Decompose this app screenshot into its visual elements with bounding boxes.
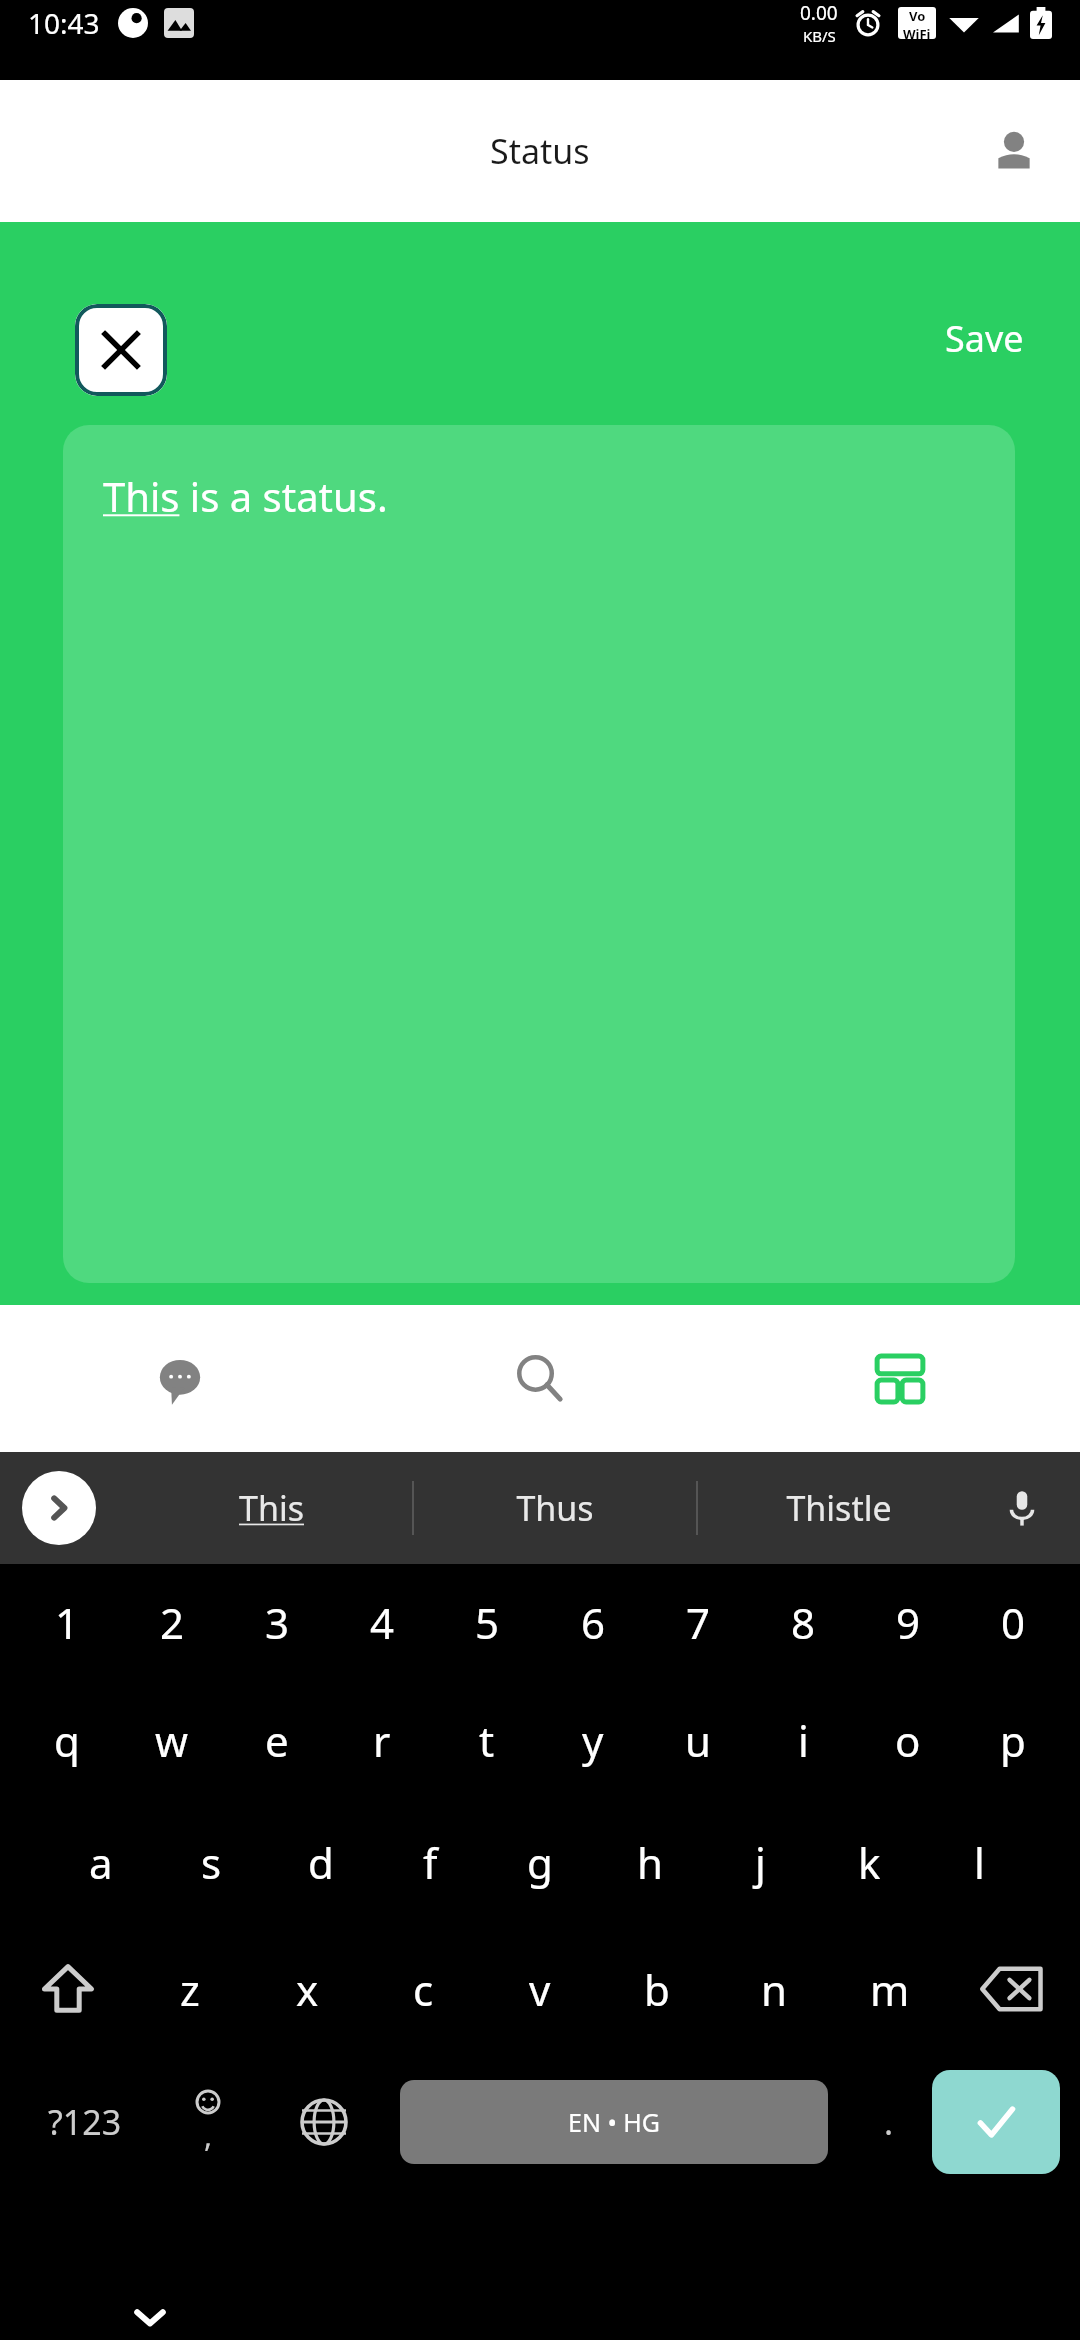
staticText: 3 <box>265 1594 290 1651</box>
staticText: p <box>1000 1712 1026 1769</box>
button[interactable]: Change keyboard language <box>266 2052 382 2192</box>
staticText: k <box>858 1834 881 1891</box>
button[interactable]: k <box>820 1804 918 1920</box>
button[interactable]: i <box>754 1682 852 1798</box>
button[interactable]: w <box>123 1682 221 1798</box>
staticText: 7 <box>686 1594 711 1651</box>
staticText: 0 <box>1001 1594 1026 1651</box>
button[interactable]: ?123 <box>20 2052 150 2192</box>
button[interactable]: t <box>438 1682 536 1798</box>
button[interactable]: Chats <box>0 1305 360 1452</box>
button[interactable]: Hide keyboard <box>104 2294 196 2340</box>
button[interactable]: 6 <box>544 1564 642 1680</box>
staticText: l <box>974 1834 985 1891</box>
staticText: b <box>644 1961 670 2018</box>
button[interactable]: EN • HG <box>400 2080 828 2164</box>
staticText: j <box>755 1834 766 1891</box>
staticText: 4 <box>370 1594 395 1651</box>
staticText: e <box>265 1712 289 1769</box>
staticText: t <box>479 1712 495 1769</box>
button[interactable]: m <box>841 1931 939 2047</box>
button[interactable]: Status <box>720 1305 1080 1452</box>
staticText: . <box>884 2099 894 2145</box>
button[interactable]: Save <box>929 304 1040 373</box>
button[interactable]: 4 <box>333 1564 431 1680</box>
button[interactable]: This is a status. <box>63 425 1015 1283</box>
staticText: h <box>637 1834 663 1891</box>
button[interactable]: Shift <box>14 1926 122 2052</box>
staticText: 8 <box>791 1594 816 1651</box>
button[interactable]: u <box>649 1682 747 1798</box>
staticText: w <box>155 1712 189 1769</box>
button[interactable]: Backspace <box>958 1926 1066 2052</box>
staticText: WiFi <box>903 25 931 39</box>
staticText: 10:43 <box>28 4 100 42</box>
button[interactable]: 7 <box>649 1564 747 1680</box>
button[interactable]: 2 <box>123 1564 221 1680</box>
button[interactable]: g <box>491 1804 589 1920</box>
button[interactable]: 5 <box>438 1564 536 1680</box>
staticText: , <box>204 2115 213 2156</box>
staticText: 9 <box>896 1594 921 1651</box>
staticText: KB/S <box>803 26 836 46</box>
staticText: Thus <box>516 1485 594 1531</box>
staticText: n <box>761 1961 787 2018</box>
button[interactable]: 9 <box>859 1564 957 1680</box>
button[interactable]: Voice input <box>986 1472 1058 1544</box>
button[interactable]: . <box>846 2052 932 2192</box>
staticText: Save <box>945 314 1024 363</box>
button[interactable]: o <box>859 1682 957 1798</box>
button[interactable]: v <box>491 1931 589 2047</box>
button[interactable]: y <box>544 1682 642 1798</box>
button[interactable]: j <box>711 1804 809 1920</box>
staticText: d <box>308 1834 334 1891</box>
button[interactable]: Thistle <box>698 1452 980 1564</box>
staticText: y <box>582 1712 604 1769</box>
button[interactable]: z <box>141 1931 239 2047</box>
button[interactable]: Thus <box>414 1452 696 1564</box>
button[interactable]: x <box>258 1931 356 2047</box>
button[interactable]: 1 <box>18 1564 116 1680</box>
button[interactable]: n <box>725 1931 823 2047</box>
button[interactable]: r <box>333 1682 431 1798</box>
staticText: Vo <box>909 7 926 25</box>
button[interactable]: p <box>964 1682 1062 1798</box>
button[interactable]: 8 <box>754 1564 852 1680</box>
button[interactable]: Profile <box>978 115 1050 187</box>
staticText: This <box>239 1485 304 1531</box>
button[interactable]: 3 <box>228 1564 326 1680</box>
button[interactable]: Search <box>360 1305 720 1452</box>
button[interactable]: a <box>52 1804 150 1920</box>
staticText: q <box>54 1712 80 1769</box>
staticText: u <box>685 1712 711 1769</box>
button[interactable]: 0 <box>964 1564 1062 1680</box>
staticText: ?123 <box>48 2099 122 2145</box>
button[interactable]: This <box>130 1452 412 1564</box>
staticText: EN • HG <box>568 2105 661 2139</box>
staticText: 0.00 <box>800 0 838 26</box>
staticText: 1 <box>55 1594 80 1651</box>
staticText: v <box>529 1961 551 2018</box>
button[interactable]: f <box>381 1804 479 1920</box>
staticText: o <box>895 1712 921 1769</box>
button[interactable]: Close <box>75 304 167 396</box>
staticText: i <box>798 1712 809 1769</box>
staticText: Thistle <box>786 1485 892 1531</box>
button[interactable]: d <box>272 1804 370 1920</box>
button[interactable]: Enter <box>932 2070 1060 2174</box>
staticText: 5 <box>475 1594 500 1651</box>
button[interactable]: b <box>608 1931 706 2047</box>
button[interactable]: Emoji and comma <box>150 2052 266 2192</box>
staticText: m <box>870 1961 910 2018</box>
staticText: a <box>89 1834 113 1891</box>
button[interactable]: q <box>18 1682 116 1798</box>
button[interactable]: e <box>228 1682 326 1798</box>
button[interactable]: More suggestions <box>22 1471 96 1545</box>
button[interactable]: s <box>162 1804 260 1920</box>
button[interactable]: h <box>601 1804 699 1920</box>
staticText: Status <box>490 128 590 174</box>
staticText: g <box>527 1834 553 1891</box>
button[interactable]: l <box>930 1804 1028 1920</box>
staticText: This is a status. <box>103 469 388 523</box>
button[interactable]: c <box>374 1931 472 2047</box>
